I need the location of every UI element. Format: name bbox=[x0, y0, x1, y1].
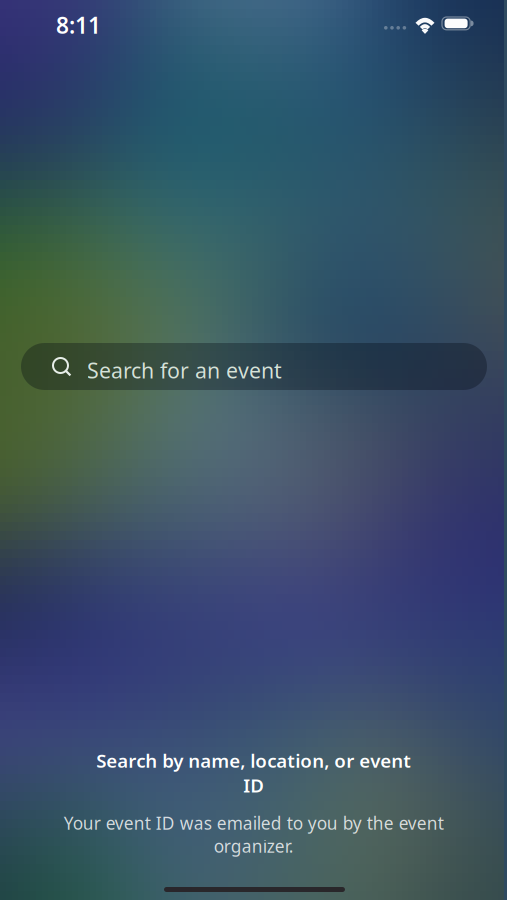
staticText: Search by name, location, or event ID bbox=[96, 748, 411, 798]
staticText: Search for an event bbox=[87, 356, 282, 384]
button[interactable]: Search for an event bbox=[21, 343, 487, 390]
staticText: 8:11 bbox=[56, 10, 101, 40]
staticText: Your event ID was emailed to you by the … bbox=[63, 812, 443, 858]
